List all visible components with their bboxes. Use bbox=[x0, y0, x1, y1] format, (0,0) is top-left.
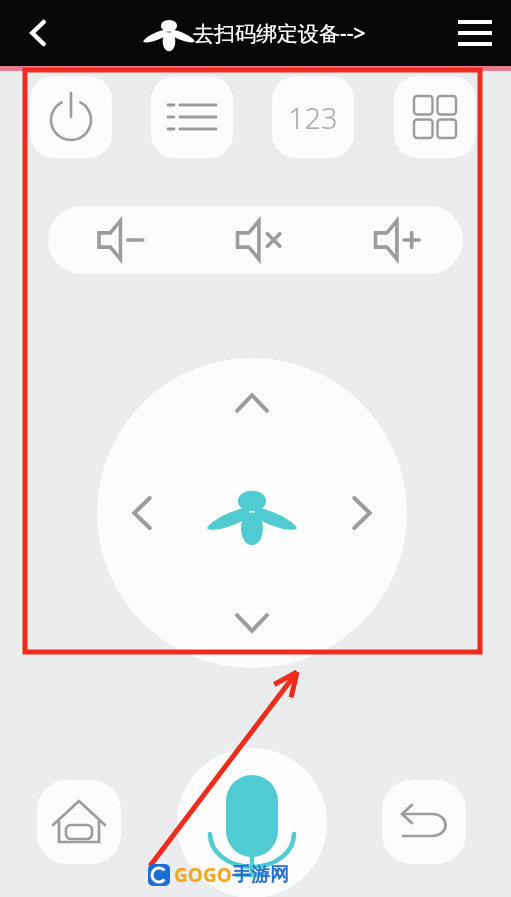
button[interactable]: Power bbox=[30, 76, 112, 158]
button[interactable]: Right bbox=[343, 481, 407, 545]
button[interactable]: 123 bbox=[272, 76, 354, 158]
button[interactable]: Voice input bbox=[177, 748, 327, 897]
button[interactable]: Up bbox=[220, 358, 284, 422]
button[interactable]: OK bbox=[191, 452, 313, 574]
button[interactable]: Volume up bbox=[325, 206, 463, 274]
button[interactable]: Apps bbox=[394, 76, 476, 158]
staticText: GO bbox=[203, 862, 232, 888]
button[interactable]: Mute bbox=[187, 206, 325, 274]
button[interactable]: Back bbox=[14, 9, 62, 57]
button[interactable]: Volume down bbox=[48, 206, 187, 274]
staticText: 去扫码绑定设备--> bbox=[193, 19, 366, 48]
button[interactable]: Home bbox=[37, 780, 121, 864]
staticText: GO bbox=[174, 862, 203, 888]
button[interactable]: List bbox=[151, 76, 233, 158]
button[interactable]: Back bbox=[382, 780, 466, 864]
button[interactable]: Menu bbox=[449, 7, 501, 59]
staticText: 手游网 bbox=[232, 863, 289, 887]
staticText: 123 bbox=[288, 98, 338, 137]
button[interactable]: Down bbox=[220, 604, 284, 668]
button[interactable]: Left bbox=[97, 481, 161, 545]
